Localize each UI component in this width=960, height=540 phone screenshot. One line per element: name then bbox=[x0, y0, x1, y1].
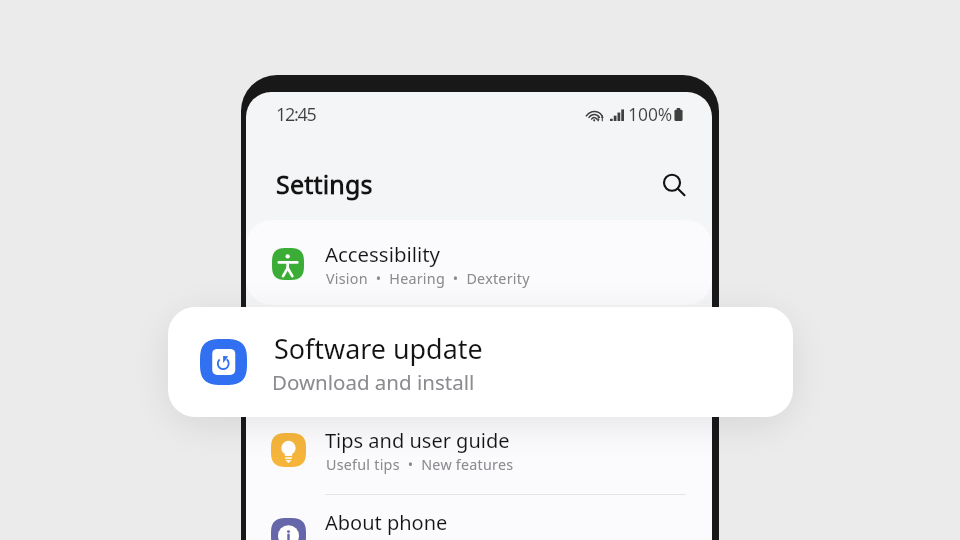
staticText: Vision • Hearing • Dexterity bbox=[326, 269, 530, 288]
button[interactable]: About phone bbox=[246, 495, 712, 540]
staticText: Download and install bbox=[272, 368, 475, 396]
staticText: Accessibility bbox=[325, 240, 440, 268]
staticText: 12:45 bbox=[276, 102, 316, 127]
button[interactable]: Search bbox=[650, 160, 694, 204]
staticText: 100% bbox=[628, 102, 673, 126]
button[interactable]: Tips and user guide bbox=[246, 406, 712, 491]
staticText: Useful tips • New features bbox=[326, 455, 514, 474]
staticText: Settings bbox=[276, 167, 373, 201]
button[interactable]: Software update bbox=[168, 307, 793, 417]
staticText: About phone bbox=[325, 509, 448, 536]
button[interactable]: Accessibility bbox=[246, 220, 712, 305]
staticText: Tips and user guide bbox=[325, 427, 510, 454]
staticText: Software update bbox=[274, 330, 483, 367]
